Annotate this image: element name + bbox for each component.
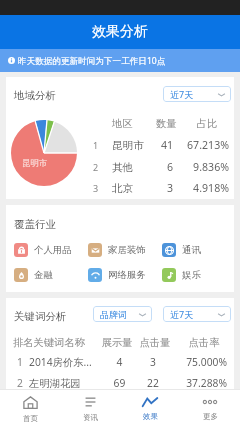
button[interactable]: 金融 (14, 266, 88, 284)
button[interactable]: 品牌词 (93, 306, 152, 322)
button[interactable]: 网络服务 (88, 266, 162, 284)
staticText: 37.288% (171, 376, 227, 390)
button[interactable]: 资讯 (60, 389, 120, 426)
staticText: 娱乐 (182, 269, 201, 281)
staticText: 67.213% (176, 138, 229, 152)
staticText: 个人用品 (34, 244, 72, 256)
staticText: 通讯 (182, 244, 201, 256)
button[interactable]: 家居装饰 (88, 241, 162, 259)
staticText: 3 (89, 182, 102, 194)
staticText: 昆明市 (112, 139, 146, 152)
staticText: 4 (104, 355, 135, 369)
staticText: 覆盖行业 (14, 218, 56, 231)
staticText: 北京 (112, 182, 146, 195)
staticText: 家居装饰 (108, 244, 146, 256)
staticText: 点击率 (181, 336, 227, 349)
staticText: 3 (148, 181, 173, 195)
staticText: 69 (104, 376, 135, 390)
staticText: 近7天 (170, 88, 194, 100)
staticText: 75.000% (171, 355, 227, 369)
staticText: 4.918% (176, 181, 229, 195)
button[interactable]: 近7天 (163, 86, 231, 102)
staticText: 展示量 (99, 336, 135, 349)
staticText: 地域分析 (14, 89, 56, 102)
button[interactable]: 娱乐 (162, 266, 234, 284)
staticText: 2 (14, 376, 26, 390)
staticText: 关键词分析 (14, 310, 67, 323)
staticText: 其他 (112, 161, 146, 174)
staticText: 首页 (23, 414, 38, 423)
staticText: 2014房价东... (29, 355, 104, 369)
staticText: 9.836% (176, 160, 229, 174)
staticText: 数量 (154, 117, 179, 130)
staticText: 左明湖花园 (29, 377, 104, 390)
staticText: 资讯 (83, 413, 98, 422)
staticText: 6 (148, 160, 173, 174)
button[interactable]: 更多 (180, 389, 240, 426)
staticText: 昆明市 (22, 158, 48, 169)
staticText: 金融 (34, 269, 53, 281)
staticText: 更多 (203, 412, 218, 421)
button[interactable]: 近7天 (163, 306, 231, 322)
staticText: 品牌词 (100, 309, 127, 320)
button[interactable]: 效果 (120, 389, 180, 426)
staticText: 2 (89, 161, 102, 173)
staticText: 排名关键词名称 (13, 336, 99, 349)
staticText: 网络服务 (108, 269, 146, 281)
staticText: 地区 (112, 117, 146, 130)
staticText: 1 (89, 139, 102, 151)
staticText: 效果分析 (92, 23, 148, 41)
staticText: 1 (14, 355, 26, 369)
staticText: 昨天数据的更新时间为下一工作日10点 (18, 55, 166, 67)
staticText: 效果 (143, 412, 158, 421)
staticText: 3 (135, 355, 171, 369)
button[interactable]: 通讯 (162, 241, 234, 259)
button[interactable]: 个人用品 (14, 241, 88, 259)
staticText: 近7天 (170, 308, 194, 320)
staticText: 22 (135, 376, 171, 390)
staticText: 41 (148, 138, 173, 152)
button[interactable]: 首页 (0, 389, 60, 426)
staticText: 占比 (184, 117, 230, 130)
staticText: 点击量 (137, 336, 173, 349)
